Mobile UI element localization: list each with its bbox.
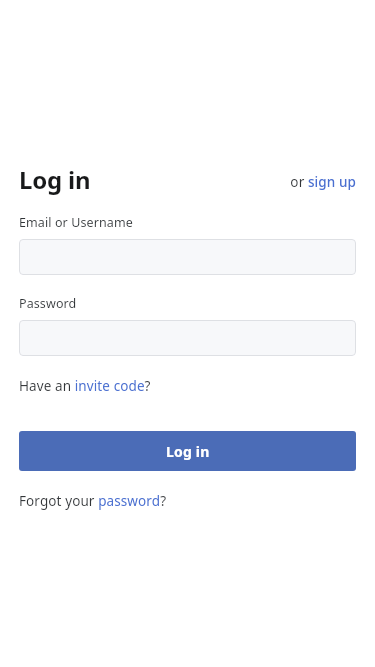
button[interactable]: or sign up bbox=[290, 173, 356, 191]
staticText: Password bbox=[19, 295, 77, 312]
button[interactable]: Forgot your password? bbox=[19, 492, 167, 510]
staticText: Forgot your password? bbox=[19, 492, 167, 510]
button[interactable]: Password input field bbox=[19, 320, 356, 356]
staticText: Email or Username bbox=[19, 214, 133, 231]
staticText: Log in bbox=[166, 442, 210, 461]
button[interactable]: Have an invite code? bbox=[19, 377, 151, 395]
staticText: or sign up bbox=[290, 173, 356, 191]
button[interactable]: Log in bbox=[19, 431, 356, 471]
staticText: Log in bbox=[19, 163, 91, 196]
button[interactable]: Email or Username input field bbox=[19, 239, 356, 275]
staticText: Have an invite code? bbox=[19, 377, 151, 395]
